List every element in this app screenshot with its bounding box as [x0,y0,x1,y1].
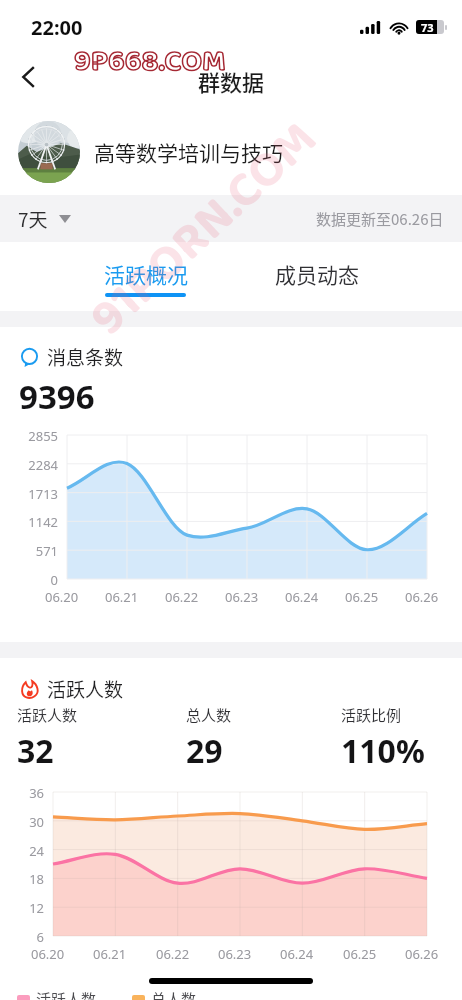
staticText: 06.20 [31,945,65,963]
staticText: 06.22 [165,588,199,606]
staticText: 活跃人数 [47,675,124,703]
staticText: 高等数学培训与技巧 [94,137,283,167]
button[interactable]: Back [6,54,52,100]
staticText: 32 [17,729,54,773]
staticText: 7天 [18,205,48,233]
staticText: 22:00 [31,14,83,41]
staticText: 活跃比例 [341,704,402,726]
staticText: 06.23 [218,945,252,963]
staticText: 06.23 [225,588,259,606]
staticText: 06.25 [345,588,379,606]
staticText: 73 [421,20,434,34]
staticText: 活跃人数 [36,988,97,1000]
staticText: 30 [0,813,44,831]
staticText: 29 [186,729,223,773]
staticText: 06.20 [45,588,79,606]
staticText: 成员动态 [275,259,359,289]
staticText: 消息条数 [47,343,124,371]
staticText: 110% [341,729,425,773]
staticText: 06.21 [105,588,139,606]
staticText: 2284 [0,456,58,474]
staticText: 06.24 [285,588,319,606]
staticText: 总人数 [151,988,197,1000]
staticText: 群数据 [198,65,265,97]
staticText: 2855 [0,427,58,445]
staticText: 活跃人数 [17,704,78,726]
staticText: 1713 [0,485,58,503]
staticText: 活跃概况 [104,259,188,289]
staticText: 9P668.COM [74,38,226,86]
button[interactable]: 高等数学培训与技巧 [0,112,462,192]
button[interactable]: 7天 [14,201,75,237]
staticText: 06.26 [405,945,439,963]
staticText: 06.22 [156,945,190,963]
staticText: 06.24 [280,945,314,963]
staticText: 24 [0,842,44,860]
staticText: 9396 [19,374,95,419]
staticText: 6 [0,928,44,946]
staticText: 数据更新至06.26日 [316,208,444,230]
staticText: 91PORN.COM [72,102,334,354]
staticText: 06.21 [93,945,127,963]
staticText: 1142 [0,513,58,531]
staticText: 06.26 [405,588,439,606]
staticText: 0 [0,571,58,589]
button[interactable]: 成员动态 [231,242,402,311]
button[interactable]: 活跃概况 [60,242,231,311]
staticText: 06.25 [343,945,377,963]
staticText: 18 [0,870,44,888]
staticText: 571 [0,542,58,560]
staticText: 36 [0,784,44,802]
staticText: 总人数 [186,704,232,726]
staticText: 9P668.COM [74,38,226,86]
staticText: 12 [0,899,44,917]
